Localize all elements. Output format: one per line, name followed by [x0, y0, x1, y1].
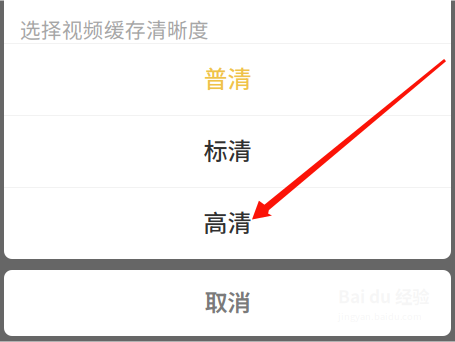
staticText: 普清	[203, 60, 251, 95]
button[interactable]: 普清	[4, 44, 451, 115]
staticText: 取消	[204, 284, 250, 318]
staticText: 选择视频缓存清晰度	[20, 14, 209, 44]
staticText: Bai du 经验	[338, 283, 429, 308]
button[interactable]: 高清	[4, 188, 451, 259]
button[interactable]: 标清	[4, 116, 451, 187]
staticText: 高清	[203, 204, 251, 239]
button[interactable]: 取消	[4, 270, 451, 336]
staticText: 标清	[203, 132, 251, 167]
